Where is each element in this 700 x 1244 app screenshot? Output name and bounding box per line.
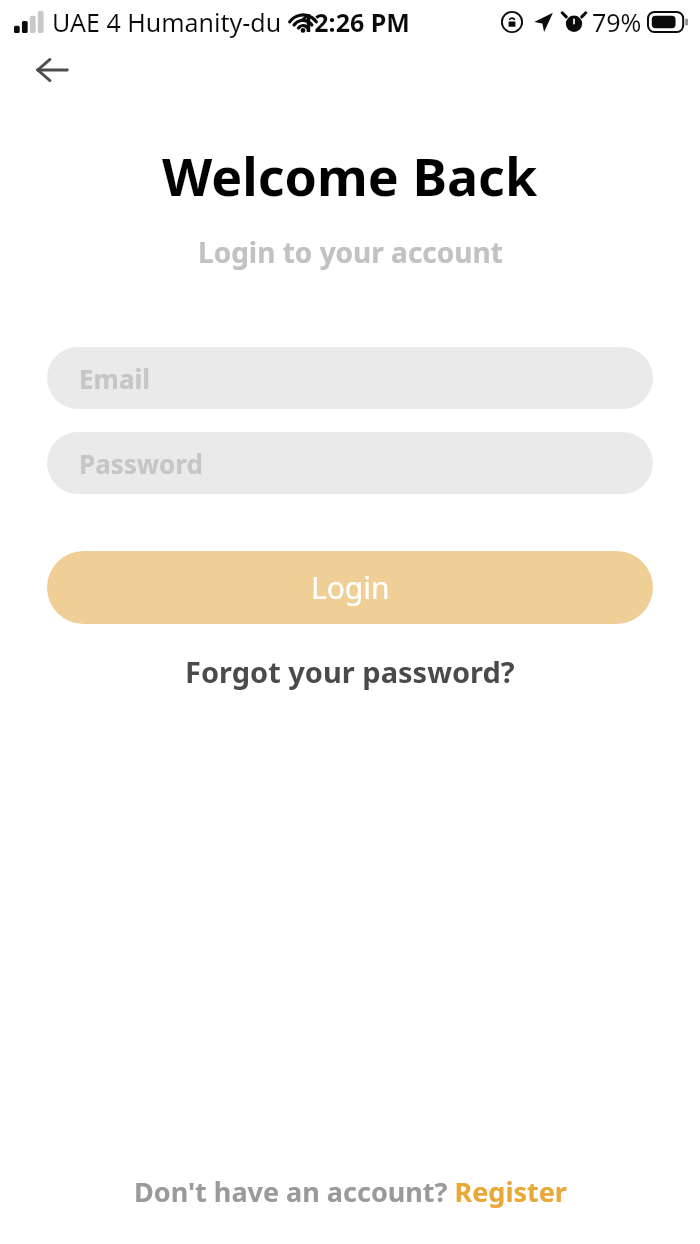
button[interactable]: Don't have an account? Register xyxy=(124,1167,577,1216)
button[interactable]: Login xyxy=(47,551,653,624)
staticText: UAE 4 Humanity-du xyxy=(52,5,282,39)
button[interactable]: Email xyxy=(47,347,653,409)
staticText: Login xyxy=(311,567,390,608)
staticText: 12:26 PM xyxy=(300,5,410,39)
button[interactable]: Forgot your password? xyxy=(173,646,527,697)
staticText: Email xyxy=(79,361,151,396)
staticText: Login to your account xyxy=(198,233,503,271)
staticText: 79% xyxy=(592,5,642,39)
staticText: Password xyxy=(79,446,203,481)
staticText: Welcome Back xyxy=(162,140,538,211)
button[interactable]: Password xyxy=(47,432,653,494)
button[interactable]: Back xyxy=(26,44,78,96)
staticText: Forgot your password? xyxy=(185,652,515,691)
staticText: Don't have an account? Register xyxy=(134,1173,567,1210)
